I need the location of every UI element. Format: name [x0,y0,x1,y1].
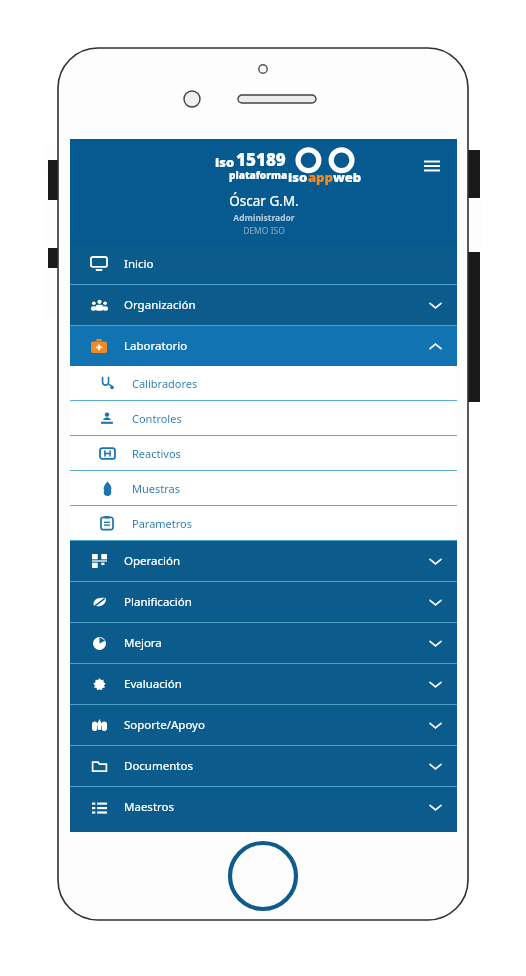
staticText: Inicio [124,256,154,272]
button[interactable]: Organización [70,285,457,325]
button[interactable]: Calibradores [70,366,457,400]
staticText: Evaluación [124,676,182,692]
staticText: Reactivos [132,446,181,461]
button[interactable]: Soporte/Apoyo [70,705,457,745]
button[interactable]: Menu [417,151,447,181]
button[interactable]: Maestros [70,787,457,827]
staticText: 15189 [236,148,286,171]
button[interactable]: Controles [70,401,457,435]
staticText: Documentos [124,758,193,774]
staticText: iso [288,168,308,186]
button[interactable]: Laboratorio [70,326,457,366]
staticText: Organización [124,297,196,313]
staticText: DEMO ISO [243,225,285,237]
button[interactable]: Muestras [70,471,457,505]
button[interactable]: Operación [70,541,457,581]
button[interactable]: Reactivos [70,436,457,470]
staticText: Planificación [124,594,192,610]
staticText: Controles [132,411,182,426]
button[interactable]: Evaluación [70,664,457,704]
staticText: Laboratorio [124,338,188,354]
staticText: Calibradores [132,376,198,391]
button[interactable]: Mejora [70,623,457,663]
staticText: Mejora [124,635,162,651]
staticText: Muestras [132,481,180,496]
staticText: Parametros [132,516,193,531]
staticText: Maestros [124,799,175,815]
staticText: web [333,168,362,186]
button[interactable]: Parametros [70,506,457,540]
staticText: Administrador [233,212,295,224]
button[interactable]: Inicio [70,244,457,284]
staticText: plataforma [229,168,288,182]
button[interactable]: Documentos [70,746,457,786]
staticText: Óscar G.M. [229,192,299,210]
staticText: Operación [124,553,181,569]
staticText: Soporte/Apoyo [124,717,205,733]
button[interactable]: Planificación [70,582,457,622]
staticText: app [308,168,333,186]
staticText: iso [215,153,235,171]
